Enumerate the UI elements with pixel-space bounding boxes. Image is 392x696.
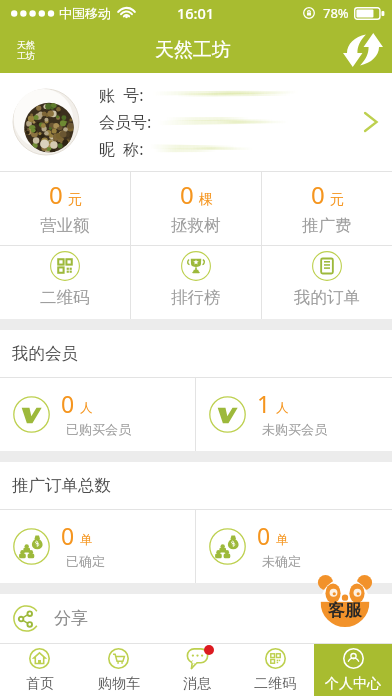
staticText: 营业额 <box>40 215 90 236</box>
staticText: 已确定 <box>66 553 105 569</box>
button[interactable]: 0 <box>0 510 195 583</box>
button[interactable]: 客服 <box>319 575 371 627</box>
staticText: 棵 <box>199 191 213 209</box>
staticText: 单 <box>276 532 289 548</box>
staticText: 元 <box>68 191 82 209</box>
staticText: 78% <box>323 4 349 22</box>
button[interactable]: 0 <box>0 172 130 245</box>
staticText: 推广费 <box>302 215 352 236</box>
button[interactable]: 购物车 <box>79 644 158 696</box>
staticText: 0 <box>61 388 75 419</box>
staticText: 我的订单 <box>294 287 360 308</box>
staticText: 0 <box>311 178 325 211</box>
button[interactable]: 1 <box>196 378 392 451</box>
staticText: 未确定 <box>262 553 301 569</box>
staticText: 购物车 <box>98 675 140 693</box>
button[interactable]: 首页 <box>0 644 79 696</box>
button[interactable]: 分享 <box>0 594 392 643</box>
staticText: 拯救树 <box>171 215 221 236</box>
button[interactable]: 二维码 <box>0 246 130 319</box>
button[interactable]: 我的订单 <box>262 246 392 319</box>
staticText: 排行榜 <box>171 287 221 308</box>
staticText: 消息 <box>183 675 211 693</box>
staticText: 昵 称: <box>99 138 144 160</box>
staticText: 16:01 <box>177 3 215 23</box>
staticText: 0 <box>257 520 271 551</box>
button[interactable]: 二维码 <box>236 644 314 696</box>
staticText: 账 号: <box>99 84 144 106</box>
staticText: 二维码 <box>254 675 296 693</box>
button[interactable]: 账 号: <box>0 73 392 171</box>
button[interactable]: 排行榜 <box>131 246 261 319</box>
staticText: 0 <box>180 178 194 211</box>
staticText: 中国移动 <box>59 5 111 21</box>
staticText: 会员号: <box>99 111 152 133</box>
staticText: 二维码 <box>40 287 90 308</box>
button[interactable]: 0 <box>131 172 261 245</box>
button[interactable]: 消息 <box>158 644 236 696</box>
staticText: 已购买会员 <box>66 421 131 437</box>
staticText: 未购买会员 <box>262 421 327 437</box>
staticText: 分享 <box>54 608 88 629</box>
staticText: 人 <box>80 400 93 416</box>
staticText: 元 <box>330 191 344 209</box>
staticText: 天然 <box>17 39 35 50</box>
staticText: 单 <box>80 532 93 548</box>
staticText: 首页 <box>26 675 54 693</box>
staticText: 我的会员 <box>12 343 78 364</box>
button[interactable]: 0 <box>196 510 392 583</box>
staticText: 推广订单总数 <box>12 475 111 496</box>
button[interactable]: 刷新 <box>343 30 383 70</box>
staticText: 人 <box>276 400 289 416</box>
staticText: 工坊 <box>17 50 35 61</box>
staticText: 0 <box>61 520 75 551</box>
button[interactable]: 0 <box>262 172 392 245</box>
staticText: 1 <box>257 388 271 419</box>
staticText: 0 <box>49 178 63 211</box>
staticText: 天然工坊 <box>155 38 231 62</box>
button[interactable]: 0 <box>0 378 195 451</box>
button[interactable]: 天然工坊 <box>9 33 43 67</box>
staticText: 客服 <box>328 600 362 621</box>
button[interactable]: 个人中心 <box>314 644 392 696</box>
staticText: 个人中心 <box>325 675 381 693</box>
